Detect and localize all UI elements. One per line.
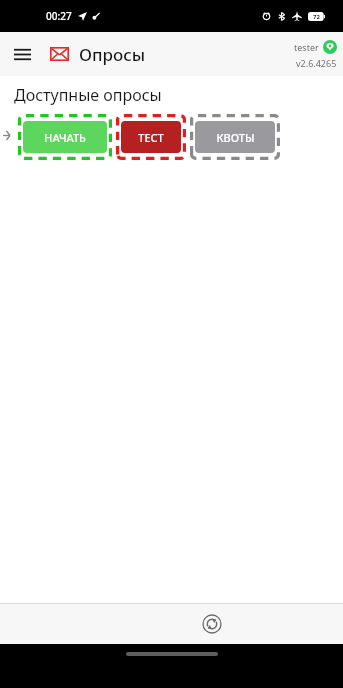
staticText: КВОТЫ [216, 130, 255, 145]
staticText: Опросы [79, 43, 146, 66]
staticText: v2.6.4265 [296, 57, 337, 69]
staticText: Доступные опросы [14, 84, 162, 106]
button[interactable]: ТЕСТ [121, 121, 181, 153]
staticText: ТЕСТ [138, 130, 164, 145]
button[interactable]: Синхронизация [196, 608, 228, 640]
button[interactable]: tester [294, 40, 343, 69]
staticText: 72 [313, 13, 320, 21]
staticText: tester [294, 41, 319, 53]
staticText: НАЧАТЬ [44, 130, 86, 145]
staticText: 00:27 [46, 9, 72, 23]
button[interactable]: НАЧАТЬ [23, 121, 107, 153]
button[interactable]: Меню [4, 36, 40, 72]
button[interactable]: КВОТЫ [195, 121, 275, 153]
